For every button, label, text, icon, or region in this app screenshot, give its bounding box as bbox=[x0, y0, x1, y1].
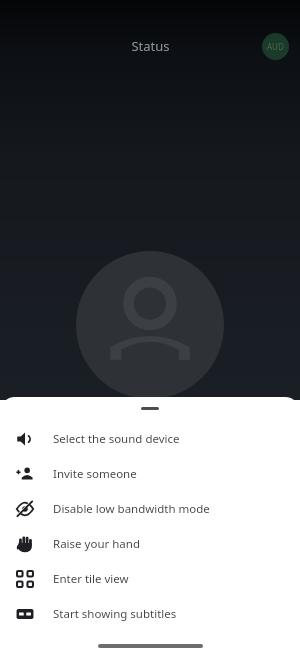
staticText: AUD bbox=[267, 41, 284, 52]
staticText: Invite someone bbox=[53, 466, 137, 482]
button[interactable]: Disable low bandwidth mode bbox=[0, 491, 300, 526]
staticText: Enter tile view bbox=[53, 571, 129, 587]
button[interactable]: Enter tile view bbox=[0, 561, 300, 596]
button[interactable]: Start showing subtitles bbox=[0, 596, 300, 631]
staticText: Start showing subtitles bbox=[53, 606, 177, 622]
button[interactable]: Select the sound device bbox=[0, 421, 300, 456]
staticText: Status bbox=[131, 37, 170, 55]
staticText: Select the sound device bbox=[53, 431, 180, 447]
button[interactable]: Account bbox=[262, 33, 289, 60]
staticText: Raise your hand bbox=[53, 536, 140, 552]
staticText: Disable low bandwidth mode bbox=[53, 501, 210, 517]
button[interactable]: Invite someone bbox=[0, 456, 300, 491]
button[interactable]: Raise your hand bbox=[0, 526, 300, 561]
